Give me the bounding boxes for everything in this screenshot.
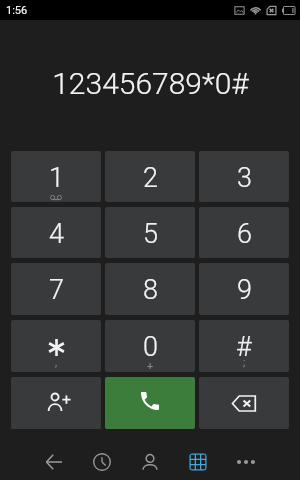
button[interactable]: Back <box>30 429 78 480</box>
button[interactable]: 7 <box>11 263 101 315</box>
button[interactable]: Contacts <box>126 429 174 480</box>
button[interactable]: 2 <box>105 151 195 202</box>
button[interactable]: 6 <box>199 207 289 258</box>
staticText: 6 <box>237 218 252 250</box>
button[interactable]: Call <box>105 377 195 429</box>
button[interactable]: 5 <box>105 207 195 258</box>
button[interactable]: 0 <box>105 320 195 372</box>
button[interactable]: 4 <box>11 207 101 258</box>
staticText: ; <box>243 356 246 369</box>
staticText: + <box>147 360 154 372</box>
button[interactable]: 8 <box>105 263 195 315</box>
staticText: 4 <box>49 218 64 250</box>
button[interactable]: Backspace <box>199 377 289 429</box>
button[interactable]: 1 <box>11 151 101 202</box>
button[interactable]: , <box>11 320 101 372</box>
staticText: 123456789*0# <box>52 66 249 101</box>
staticText: 8 <box>143 274 158 306</box>
staticText: 5 <box>143 218 158 250</box>
staticText: 9 <box>237 274 252 306</box>
staticText: 2 <box>143 162 158 194</box>
staticText: 3 <box>237 162 252 194</box>
button[interactable]: 9 <box>199 263 289 315</box>
staticText: 1 <box>49 162 64 194</box>
button[interactable]: More options <box>222 429 270 480</box>
button[interactable]: Recents <box>78 429 126 480</box>
button[interactable]: Add contact <box>11 377 101 429</box>
button[interactable]: # <box>199 320 289 372</box>
button[interactable]: 3 <box>199 151 289 202</box>
staticText: , <box>55 356 58 369</box>
button[interactable]: Keypad <box>174 429 222 480</box>
staticText: # <box>236 331 252 363</box>
staticText: 1:56 <box>6 4 28 17</box>
staticText: 7 <box>49 274 64 306</box>
staticText: 0 <box>143 331 158 363</box>
